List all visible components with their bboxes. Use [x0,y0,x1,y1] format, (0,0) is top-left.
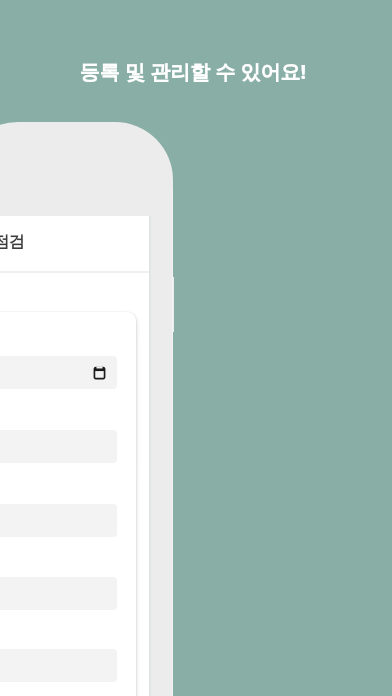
staticText: 안전점검 [0,232,25,252]
button[interactable]: 날짜 선택 [0,356,117,389]
button[interactable]: 날짜 선택 [93,366,106,379]
staticText: 등록 및 관리할 수 있어요! [0,58,389,85]
